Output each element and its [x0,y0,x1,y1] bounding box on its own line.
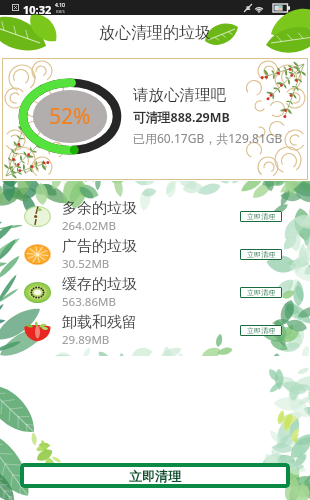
button[interactable]: 立即清理 [240,325,282,336]
staticText: 30.52MB [62,256,110,272]
staticText: 请放心清理吧 [133,85,226,105]
button[interactable]: 卸载和残留 [0,311,310,349]
staticText: 立即清理 [129,468,181,484]
staticText: 立即清理 [247,212,275,221]
staticText: 立即清理 [247,326,275,335]
other: Battery [273,4,290,12]
button[interactable]: 立即清理 [20,463,290,488]
staticText: 缓存的垃圾 [62,275,137,294]
button[interactable]: 立即清理 [240,211,282,222]
staticText: 广告的垃圾 [62,237,137,256]
button[interactable]: 缓存的垃圾 [0,273,310,311]
staticText: 卸载和残留 [62,313,137,332]
staticText: 29.89MB [62,332,110,348]
staticText: 4.10 [55,2,65,9]
other: Wi-Fi [254,4,264,14]
staticText: 563.86MB [62,294,116,310]
button[interactable]: 立即清理 [240,249,282,260]
staticText: 可清理888.29MB [133,109,230,126]
staticText: KB/S [56,9,65,14]
other: Silent [244,4,252,12]
staticText: 放心清理的垃圾 [99,23,211,43]
staticText: 52% [49,102,91,131]
button[interactable]: 广告的垃圾 [0,235,310,273]
button[interactable]: 立即清理 [240,287,282,298]
staticText: 10:32 [23,2,52,17]
staticText: 多余的垃圾 [62,199,137,218]
staticText: 立即清理 [247,250,275,259]
staticText: 264.02MB [62,218,116,234]
button[interactable]: 多余的垃圾 [0,197,310,235]
staticText: 已用60.17GB，共129.81GB [133,130,283,146]
staticText: 立即清理 [247,288,275,297]
